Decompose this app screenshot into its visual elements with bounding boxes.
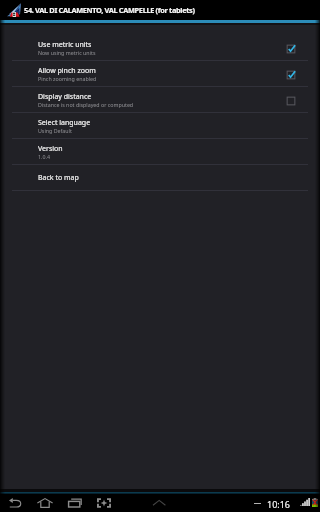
- button[interactable]: Screenshot: [93, 494, 115, 512]
- staticText: Use metric units: [38, 40, 92, 50]
- button[interactable]: Use metric units: [0, 34, 320, 60]
- staticText: Back to map: [38, 173, 79, 183]
- button[interactable]: Home: [33, 494, 55, 512]
- staticText: Pinch zooming enabled: [38, 75, 97, 82]
- button[interactable]: Allow pinch zoom: [0, 60, 320, 86]
- button[interactable]: Version: [0, 138, 320, 164]
- button[interactable]: Display distance: [0, 86, 320, 112]
- staticText: Select language: [38, 118, 91, 128]
- staticText: Now using metric units: [38, 49, 96, 56]
- button[interactable]: Display distance: [281, 91, 301, 111]
- staticText: Display distance: [38, 92, 92, 102]
- button[interactable]: Back to map: [0, 164, 320, 190]
- button[interactable]: Select language: [0, 112, 320, 138]
- button[interactable]: Use metric units: [281, 39, 301, 59]
- staticText: Version: [38, 144, 63, 154]
- button[interactable]: 54. VAL DI CALAMENTO, VAL CAMPELLE (for …: [0, 0, 199, 20]
- button[interactable]: Allow pinch zoom: [281, 65, 301, 85]
- button[interactable]: Recent apps: [64, 494, 86, 512]
- staticText: 10:16: [267, 498, 291, 510]
- button[interactable]: Notifications: [149, 494, 171, 512]
- staticText: Using Default: [38, 127, 72, 134]
- staticText: 54. VAL DI CALAMENTO, VAL CAMPELLE (for …: [24, 5, 195, 15]
- button[interactable]: Back: [5, 494, 27, 512]
- staticText: Distance is not displayed or computed: [38, 101, 134, 108]
- staticText: Allow pinch zoom: [38, 66, 96, 76]
- staticText: 1.0.4: [38, 153, 50, 160]
